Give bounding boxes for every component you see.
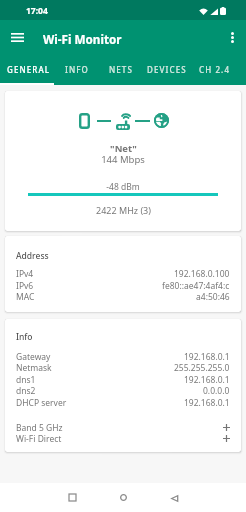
button[interactable]: More options: [220, 25, 244, 49]
button[interactable]: IPv4: [5, 268, 241, 279]
button[interactable]: NETS: [98, 54, 143, 85]
button[interactable]: INFO: [55, 54, 99, 85]
staticText: Address: [16, 250, 49, 262]
staticText: NETS: [109, 64, 133, 75]
button[interactable]: DHCP server: [5, 397, 241, 408]
button[interactable]: Netmask: [5, 362, 241, 373]
staticText: 192.168.0.100: [174, 268, 230, 279]
button[interactable]: Wi-Fi Direct: [5, 433, 241, 444]
button[interactable]: Open navigation menu: [5, 25, 29, 49]
staticText: 0.0.0.0: [203, 385, 230, 396]
staticText: -48 dBm: [106, 181, 140, 193]
button[interactable]: CH 2.4: [191, 54, 238, 85]
button[interactable]: MAC: [5, 291, 241, 302]
button[interactable]: dns2: [5, 385, 241, 396]
button[interactable]: IPv6: [5, 280, 241, 291]
staticText: Wi-Fi Monitor: [43, 31, 122, 47]
staticText: 192.168.0.1: [184, 397, 230, 408]
button[interactable]: Back: [160, 484, 188, 512]
staticText: DEVICES: [147, 64, 187, 75]
staticText: 17:04: [26, 5, 48, 17]
staticText: 144 Mbps: [101, 153, 145, 166]
button[interactable]: GENERAL: [4, 54, 53, 85]
button[interactable]: DEVICES: [144, 54, 190, 85]
staticText: "Net": [110, 142, 137, 155]
button[interactable]: Recent apps: [58, 483, 86, 511]
staticText: MAC: [16, 291, 35, 302]
button[interactable]: Band 5 GHz: [5, 422, 241, 433]
staticText: 192.168.0.1: [184, 374, 230, 385]
staticText: INFO: [65, 64, 89, 75]
staticText: dns1: [16, 374, 36, 385]
staticText: fe80::ae47:4af4:c: [162, 280, 230, 291]
staticText: 2422 MHz (3): [96, 204, 151, 216]
staticText: IPv6: [16, 280, 34, 291]
staticText: CH 2.4: [199, 64, 231, 75]
staticText: dns2: [16, 385, 36, 396]
staticText: Netmask: [16, 362, 52, 373]
staticText: Info: [16, 331, 33, 343]
button[interactable]: Home: [109, 483, 137, 511]
button[interactable]: dns1: [5, 374, 241, 385]
staticText: Gateway: [16, 351, 51, 362]
staticText: GENERAL: [7, 64, 51, 75]
staticText: IPv4: [16, 268, 34, 279]
staticText: Band 5 GHz: [16, 422, 63, 433]
button[interactable]: Gateway: [5, 351, 241, 362]
staticText: 255.255.255.0: [174, 362, 230, 373]
staticText: DHCP server: [16, 397, 67, 408]
staticText: Wi-Fi Direct: [16, 433, 62, 444]
staticText: 192.168.0.1: [184, 351, 230, 362]
staticText: a4:50:46: [196, 291, 230, 302]
